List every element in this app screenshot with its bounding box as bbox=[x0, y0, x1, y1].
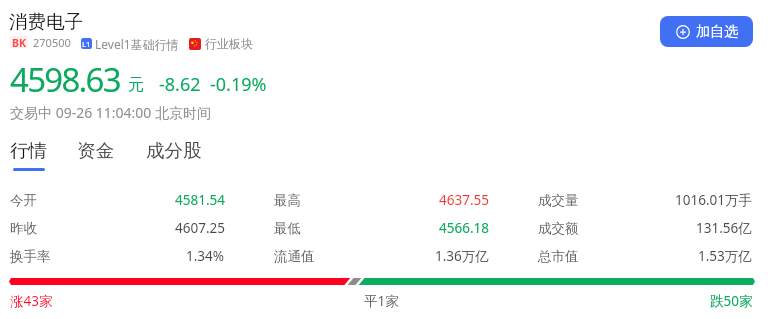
staticText: 4581.54 bbox=[175, 191, 225, 209]
staticText: BK bbox=[12, 36, 26, 48]
button[interactable]: 中国A股 bbox=[189, 35, 253, 52]
button[interactable]: 总市值 bbox=[538, 242, 752, 270]
other: 涨跌家数比例 bbox=[9, 278, 755, 285]
staticText: 4566.18 bbox=[439, 219, 489, 237]
staticText: 4598.63 bbox=[10, 57, 120, 102]
staticText: 平1家 bbox=[364, 292, 399, 310]
staticText: 成分股 bbox=[146, 139, 202, 162]
staticText: 涨43家 bbox=[10, 292, 53, 310]
button[interactable]: 昨收 bbox=[10, 214, 225, 242]
staticText: 行情 bbox=[10, 139, 47, 162]
staticText: 资金 bbox=[77, 139, 114, 162]
button[interactable]: 流通值 bbox=[274, 242, 489, 270]
staticText: 流通值 bbox=[274, 248, 315, 265]
staticText: 加自选 bbox=[696, 23, 738, 41]
button[interactable]: 成交额 bbox=[538, 214, 752, 242]
button[interactable]: 资金 bbox=[77, 139, 114, 171]
staticText: 1.53万亿 bbox=[698, 247, 752, 265]
staticText: 消费电子 bbox=[9, 10, 83, 33]
staticText: 今开 bbox=[10, 192, 37, 209]
staticText: 1.36万亿 bbox=[435, 247, 489, 265]
staticText: 4607.25 bbox=[175, 219, 225, 237]
staticText: 1.34% bbox=[186, 247, 225, 265]
staticText: 4637.55 bbox=[439, 191, 489, 209]
staticText: Level1基础行情 bbox=[95, 36, 179, 52]
button[interactable]: 今开 bbox=[10, 186, 225, 214]
button[interactable]: 行情 bbox=[10, 139, 47, 171]
staticText: 元 bbox=[128, 75, 144, 95]
staticText: L1 bbox=[82, 39, 91, 49]
staticText: 270500 bbox=[33, 35, 71, 50]
staticText: 最高 bbox=[274, 192, 301, 209]
button[interactable]: L1 bbox=[81, 35, 179, 52]
staticText: 交易中 09-26 11:04:00 北京时间 bbox=[10, 103, 212, 122]
staticText: 昨收 bbox=[10, 220, 37, 237]
other: 中国A股 bbox=[189, 38, 201, 50]
staticText: 1016.01万手 bbox=[675, 191, 752, 209]
button[interactable]: 换手率 bbox=[10, 242, 225, 270]
button[interactable]: 成分股 bbox=[146, 139, 202, 171]
staticText: 行业板块 bbox=[205, 36, 253, 51]
button[interactable]: 最低 bbox=[274, 214, 489, 242]
staticText: 最低 bbox=[274, 220, 301, 237]
staticText: -8.62 bbox=[159, 72, 201, 97]
staticText: 跌50家 bbox=[710, 292, 753, 310]
button[interactable]: 最高 bbox=[274, 186, 489, 214]
staticText: 总市值 bbox=[538, 248, 579, 265]
staticText: 成交额 bbox=[538, 220, 579, 237]
button[interactable]: BK bbox=[10, 36, 28, 48]
staticText: 131.56亿 bbox=[696, 219, 752, 237]
button[interactable]: 加自选 bbox=[660, 16, 753, 47]
staticText: 换手率 bbox=[10, 248, 51, 265]
staticText: 成交量 bbox=[538, 192, 579, 209]
staticText: -0.19% bbox=[210, 72, 267, 97]
button[interactable]: 成交量 bbox=[538, 186, 752, 214]
